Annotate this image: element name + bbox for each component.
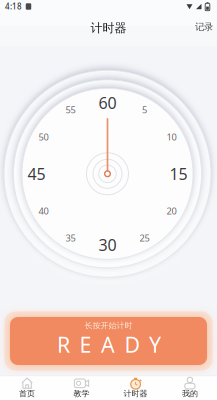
staticText: 20 xyxy=(167,205,177,217)
staticText: 计时器 xyxy=(124,389,148,398)
staticText: 我的 xyxy=(182,389,198,398)
staticText: 计时器 xyxy=(90,21,126,35)
staticText: 15 xyxy=(169,163,187,184)
staticText: 45 xyxy=(27,163,45,184)
staticText: 35 xyxy=(65,232,75,244)
staticText: 60 xyxy=(98,92,116,113)
staticText: 教学 xyxy=(73,389,89,398)
staticText: 10 xyxy=(167,131,177,143)
button[interactable]: 首页 xyxy=(0,376,54,399)
staticText: 5 xyxy=(142,103,147,116)
staticText: 记录 xyxy=(195,21,213,33)
staticText: 首页 xyxy=(19,389,35,398)
staticText: 30 xyxy=(98,234,116,255)
staticText: READY xyxy=(57,330,161,359)
staticText: 4:18 xyxy=(5,1,22,12)
staticText: 25 xyxy=(139,232,149,244)
button[interactable]: 我的 xyxy=(163,376,217,399)
button[interactable]: 计时器 xyxy=(109,376,163,399)
staticText: 55 xyxy=(65,103,75,116)
staticText: 40 xyxy=(38,205,48,217)
button[interactable]: 教学 xyxy=(54,376,108,399)
staticText: 50 xyxy=(38,131,48,143)
button[interactable]: 记录 xyxy=(190,19,217,35)
staticText: 长按开始计时 xyxy=(84,321,132,330)
button[interactable]: 长按开始计时 xyxy=(10,317,207,365)
